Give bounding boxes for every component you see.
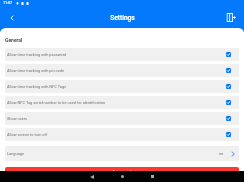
button[interactable]: Log out — [5, 167, 239, 176]
button[interactable]: Log out — [223, 9, 239, 25]
button[interactable]: Back — [4, 10, 20, 26]
staticText: Allow time tracking with NFC Tags — [7, 84, 226, 89]
staticText: Show users — [7, 116, 226, 121]
staticText: Log out — [113, 169, 132, 175]
button[interactable]: Recent apps — [146, 171, 158, 182]
button[interactable]: Allow time tracking with pin code — [5, 64, 239, 77]
staticText: Allow time tracking with password — [7, 52, 226, 57]
staticText: Settings — [110, 14, 135, 22]
button[interactable]: Back — [86, 171, 98, 182]
staticText: Language — [7, 151, 219, 156]
staticText: Allow screen to turn off — [7, 132, 226, 137]
staticText: Allow time tracking with pin code — [7, 68, 226, 73]
button[interactable]: Allow NFC Tag serial number to be used f… — [5, 96, 239, 109]
button[interactable]: Show users — [5, 112, 239, 125]
staticText: General — [5, 37, 23, 43]
staticText: 11:07 — [3, 1, 13, 5]
button[interactable]: Allow time tracking with NFC Tags — [5, 80, 239, 93]
button[interactable]: Allow screen to turn off — [5, 128, 239, 141]
button[interactable]: Allow time tracking with password — [5, 48, 239, 61]
staticText: en — [219, 151, 224, 156]
button[interactable]: Home — [116, 171, 128, 182]
staticText: Allow NFC Tag serial number to be used f… — [7, 100, 226, 105]
button[interactable]: Language — [5, 146, 239, 161]
